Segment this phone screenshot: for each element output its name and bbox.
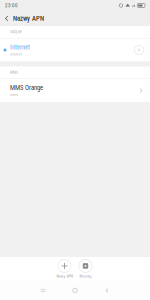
staticText: Resetuj [79,274,91,279]
staticText: Nazwy APN [13,15,44,22]
staticText: mms [10,92,18,97]
staticText: OGÓLNY [10,30,22,34]
staticText: 23:00 [5,2,18,8]
staticText: Internet [10,43,30,51]
button[interactable]: Resetuj [75,259,96,279]
button[interactable]: Home [62,281,88,299]
button[interactable]: MMS Orange [0,79,150,102]
staticText: Nowy APN [56,274,72,279]
button[interactable]: Back [0,11,13,26]
staticText: internet [10,52,22,56]
button[interactable]: Internet [0,38,150,61]
staticText: MMS Orange [10,84,43,92]
button[interactable]: Recent apps [30,281,56,299]
staticText: MMS [10,70,18,75]
button[interactable]: Nowy APN [54,259,75,279]
button[interactable]: Back [94,281,120,299]
